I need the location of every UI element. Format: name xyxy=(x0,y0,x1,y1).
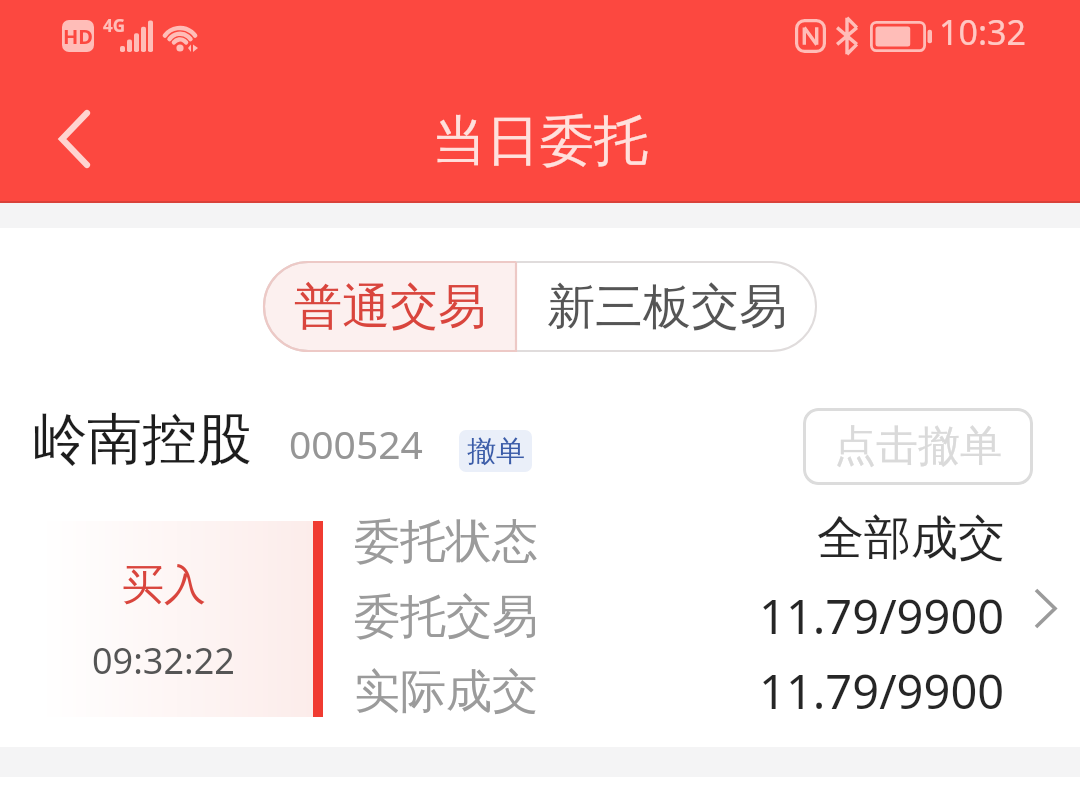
staticText: 10:32 xyxy=(939,9,1026,55)
button[interactable]: 撤单 xyxy=(459,430,532,472)
staticText: 委托状态 xyxy=(354,513,538,571)
staticText: 实际成交 xyxy=(354,663,538,721)
button[interactable]: 点击撤单 xyxy=(803,408,1033,485)
button[interactable] xyxy=(0,390,1080,730)
staticText: 09:32:22 xyxy=(92,636,235,685)
button[interactable]: 普通交易 xyxy=(263,261,516,352)
button[interactable]: Back xyxy=(32,97,116,181)
staticText: 000524 xyxy=(289,417,423,470)
staticText: 委托交易 xyxy=(354,588,538,646)
staticText: 新三板交易 xyxy=(547,277,787,337)
staticText: 4G xyxy=(103,14,126,37)
staticText: 当日委托 xyxy=(432,107,648,175)
staticText: 普通交易 xyxy=(294,277,486,337)
staticText: 全部成交 xyxy=(817,509,1005,568)
staticText: 11.79/9900 xyxy=(759,659,1005,723)
button[interactable]: 新三板交易 xyxy=(516,261,817,352)
staticText: 点击撤单 xyxy=(834,420,1002,473)
staticText: HD xyxy=(63,23,93,50)
staticText: 撤单 xyxy=(467,433,525,470)
staticText: 岭南控股 xyxy=(32,405,252,474)
staticText: 买入 xyxy=(122,559,206,612)
staticText: 11.79/9900 xyxy=(759,584,1005,648)
